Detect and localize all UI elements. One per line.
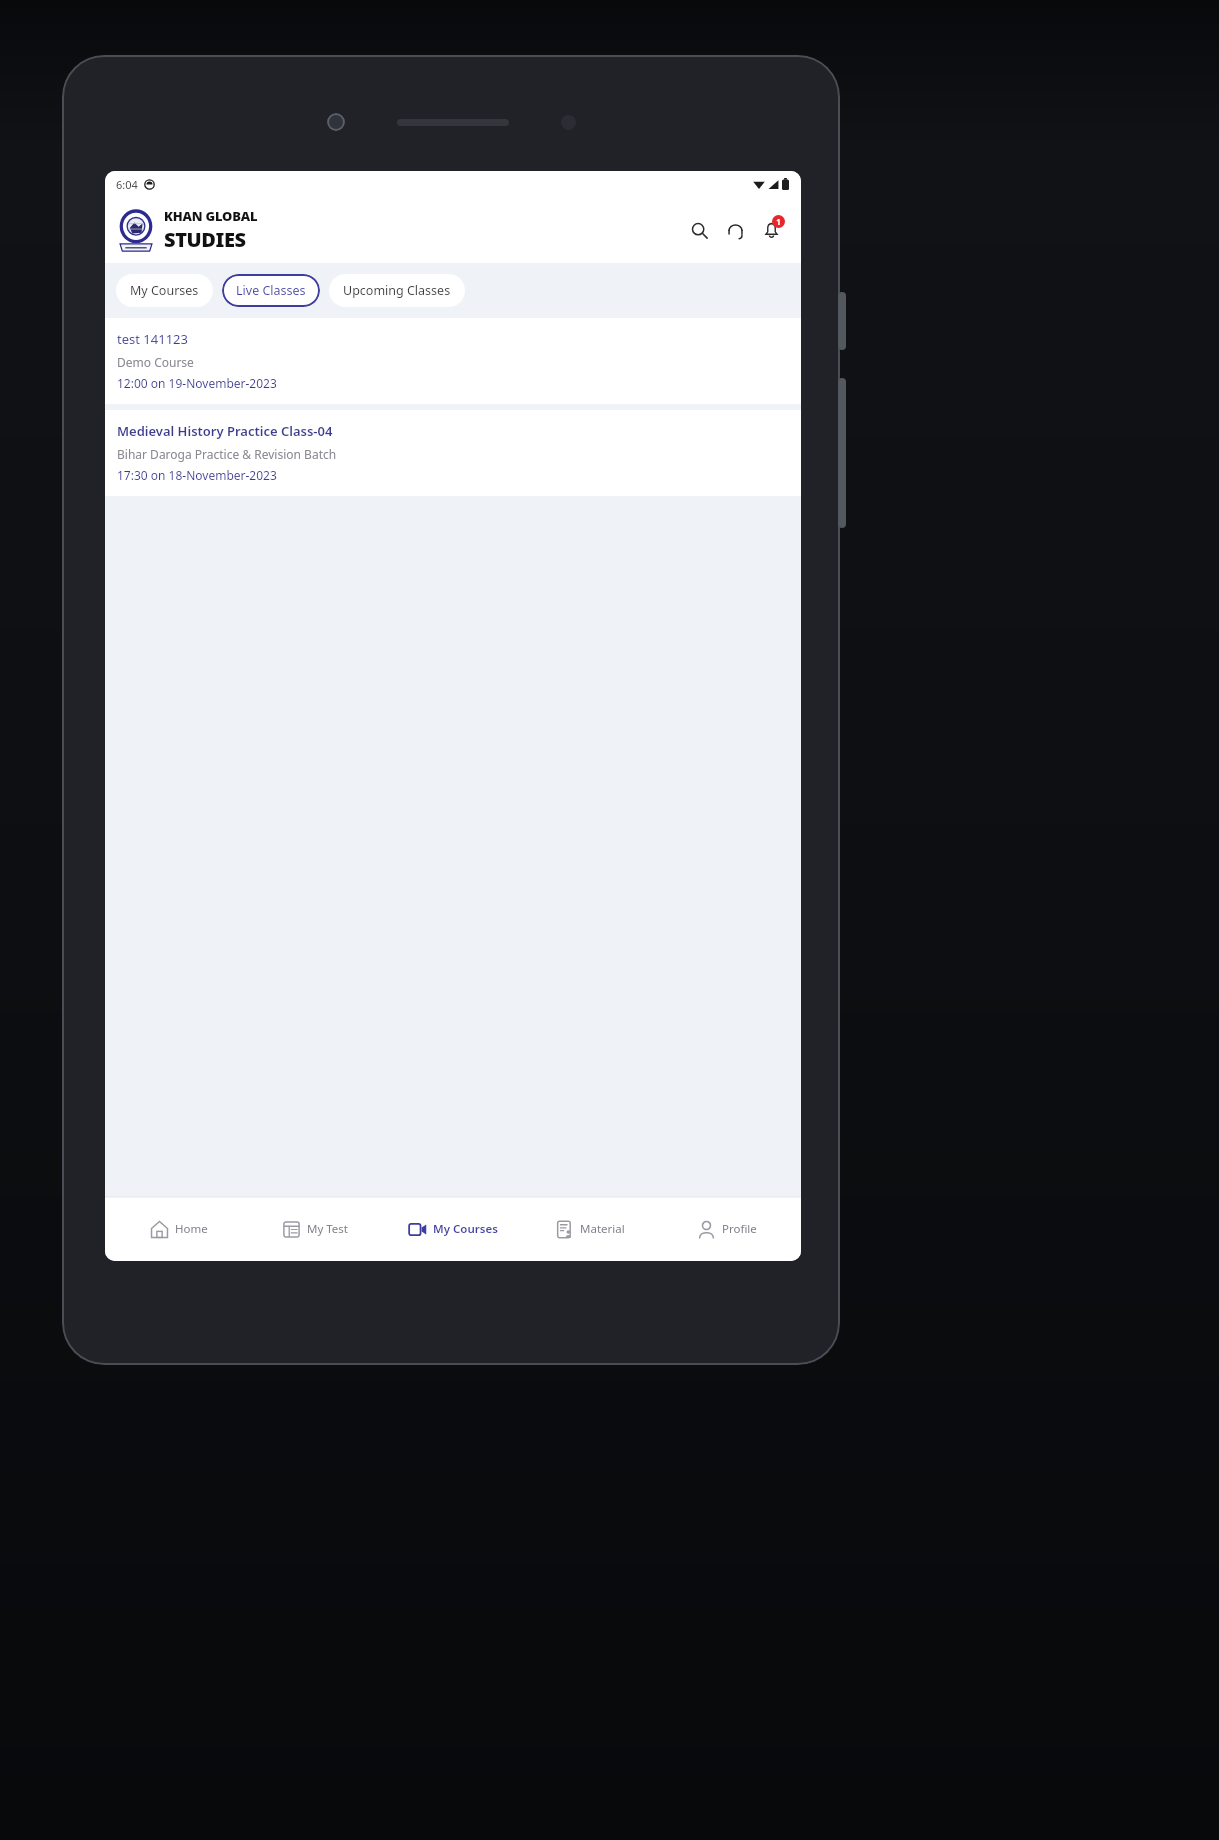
staticText: Medieval History Practice Class-04: [117, 422, 333, 440]
staticText: 12:00 on 19-November-2023: [117, 375, 277, 391]
staticText: STUDIES: [164, 226, 246, 253]
button[interactable]: Medieval History Practice Class-04: [105, 410, 801, 496]
button[interactable]: Notifications: [755, 214, 787, 246]
button[interactable]: My Test: [247, 1197, 384, 1261]
staticText: Upcoming Classes: [343, 282, 451, 299]
button[interactable]: My Courses: [384, 1197, 521, 1261]
staticText: My Test: [307, 1221, 349, 1237]
staticText: Bihar Daroga Practice & Revision Batch: [117, 446, 337, 462]
staticText: Material: [580, 1221, 625, 1237]
staticText: 1: [776, 216, 781, 227]
button[interactable]: Upcoming Classes: [329, 274, 465, 307]
button[interactable]: test 141123: [105, 318, 801, 404]
button[interactable]: Live Classes: [222, 274, 320, 307]
staticText: Live Classes: [236, 282, 306, 299]
staticText: test 141123: [117, 330, 188, 348]
staticText: Home: [175, 1221, 208, 1237]
staticText: Profile: [722, 1221, 757, 1237]
staticText: KHAN GLOBAL: [164, 207, 258, 225]
staticText: 17:30 on 18-November-2023: [117, 467, 277, 483]
button[interactable]: Support: [719, 214, 751, 246]
button[interactable]: Profile: [658, 1197, 795, 1261]
button[interactable]: Home: [111, 1197, 247, 1261]
button[interactable]: Search: [683, 214, 715, 246]
staticText: Demo Course: [117, 354, 194, 370]
staticText: 6:04: [116, 177, 138, 192]
button[interactable]: My Courses: [116, 274, 213, 307]
staticText: My Courses: [433, 1221, 498, 1237]
staticText: My Courses: [130, 282, 199, 299]
button[interactable]: Material: [521, 1197, 658, 1261]
